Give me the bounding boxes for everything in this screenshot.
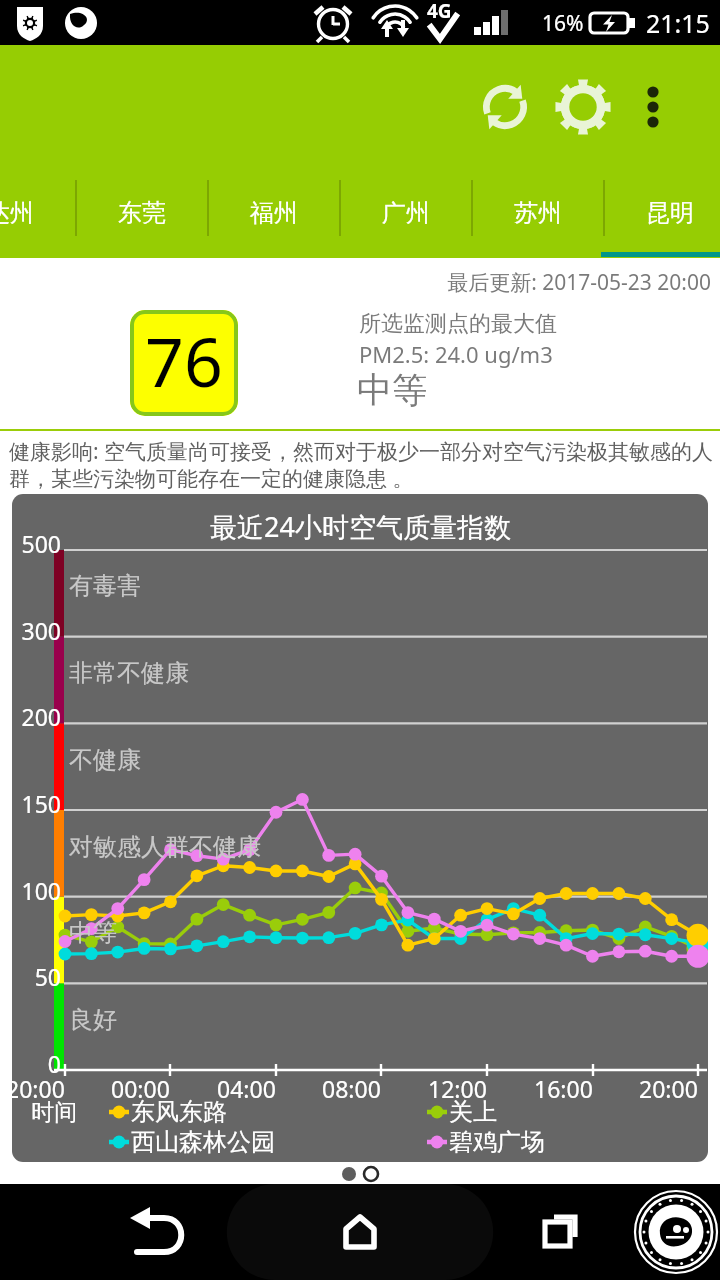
staticText: 良好 — [69, 1005, 117, 1035]
staticText: 16:00 — [534, 1073, 593, 1104]
staticText: 对敏感人群不健康 — [69, 832, 261, 862]
staticText: 中等 — [357, 368, 427, 412]
staticText: 中等 — [69, 918, 117, 948]
staticText: 关上 — [449, 1097, 497, 1127]
staticText: 00:00 — [111, 1073, 170, 1104]
staticText: 150 — [21, 788, 61, 819]
button[interactable]: 广州 — [340, 168, 472, 258]
staticText: 昆明 — [646, 198, 694, 228]
button[interactable]: 苏州 — [472, 168, 604, 258]
staticText: 时间 — [31, 1098, 77, 1127]
button[interactable]: Refresh — [466, 68, 544, 146]
button[interactable]: Back — [120, 1184, 200, 1280]
staticText: 16% — [542, 9, 584, 38]
staticText: 500 — [21, 528, 61, 559]
button[interactable]: 福州 — [208, 168, 340, 258]
button[interactable]: Settings — [544, 68, 622, 146]
staticText: 广州 — [382, 198, 430, 228]
button[interactable]: 东莞 — [76, 168, 208, 258]
staticText: 达州 — [0, 198, 34, 228]
button[interactable]: 达州 — [0, 168, 76, 258]
button[interactable]: Home — [305, 1184, 415, 1280]
staticText: 100 — [21, 875, 61, 906]
button[interactable]: 昆明 — [604, 168, 720, 258]
button[interactable]: More options — [622, 76, 684, 138]
staticText: 最近24小时空气质量指数 — [210, 508, 511, 545]
staticText: 所选监测点的最大值 — [359, 310, 557, 338]
staticText: 0 — [47, 1048, 61, 1079]
staticText: 健康影响: 空气质量尚可接受，然而对于极少一部分对空气污染极其敏感的人群，某些污… — [9, 437, 714, 492]
staticText: 200 — [21, 701, 61, 732]
staticText: 20:00 — [639, 1073, 698, 1104]
staticText: 4G — [427, 0, 452, 24]
staticText: 08:00 — [322, 1073, 381, 1104]
staticText: 东风东路 — [131, 1097, 227, 1127]
staticText: 50 — [34, 961, 61, 992]
staticText: 76 — [145, 314, 223, 407]
staticText: 不健康 — [69, 745, 141, 775]
staticText: 20:00 — [12, 1073, 65, 1104]
button[interactable]: Recent apps — [518, 1184, 598, 1280]
staticText: 东莞 — [118, 198, 166, 228]
staticText: 04:00 — [217, 1073, 276, 1104]
staticText: 有毒害 — [69, 571, 141, 601]
staticText: 21:15 — [646, 6, 710, 40]
staticText: 300 — [21, 615, 61, 646]
staticText: 最后更新: 2017-05-23 20:00 — [0, 268, 711, 297]
staticText: 非常不健康 — [69, 658, 189, 688]
staticText: 碧鸡广场 — [449, 1127, 545, 1157]
staticText: 苏州 — [514, 198, 562, 228]
staticText: 西山森林公园 — [131, 1127, 275, 1157]
staticText: 福州 — [250, 198, 298, 228]
staticText: 12:00 — [428, 1073, 487, 1104]
staticText: PM2.5: 24.0 ug/m3 — [359, 339, 553, 369]
